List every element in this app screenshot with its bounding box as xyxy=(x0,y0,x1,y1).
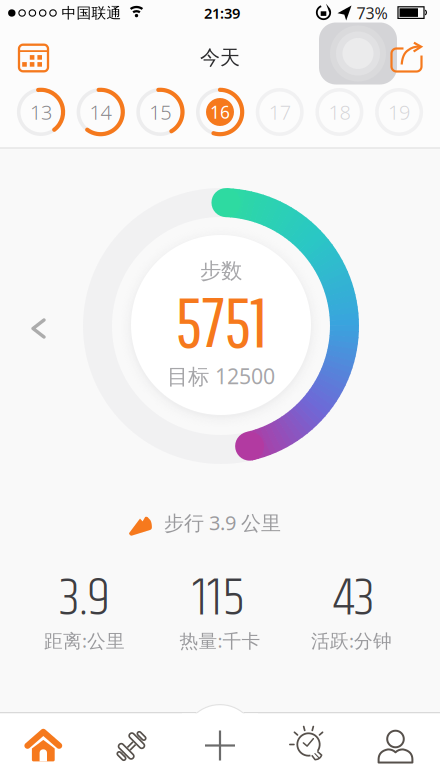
staticText: 13 xyxy=(30,99,52,125)
button[interactable]: Profile xyxy=(378,730,413,763)
staticText: 步行 3.9 公里 xyxy=(164,509,281,536)
staticText: 活跃:分钟 xyxy=(311,628,392,653)
button[interactable]: 19 xyxy=(374,87,424,137)
button[interactable]: Previous day xyxy=(31,318,45,338)
staticText: 16 xyxy=(210,100,230,123)
staticText: 热量:千卡 xyxy=(179,628,260,653)
staticText: 15 xyxy=(149,99,171,125)
button[interactable]: 15 xyxy=(135,87,185,137)
staticText: 3.9 xyxy=(59,557,110,641)
button[interactable]: Add xyxy=(205,730,235,760)
button[interactable]: AssistiveTouch xyxy=(319,22,397,84)
staticText: 115 xyxy=(192,557,245,641)
button[interactable]: 17 xyxy=(255,87,305,137)
staticText: 距离:公里 xyxy=(44,628,125,653)
staticText: 43 xyxy=(333,557,375,641)
button[interactable]: Workouts xyxy=(112,728,150,763)
button[interactable]: 16 xyxy=(195,87,245,137)
button[interactable]: 13 xyxy=(16,87,66,137)
button[interactable]: Calendar xyxy=(17,43,49,72)
staticText: 21:39 xyxy=(204,3,240,23)
staticText: 今天 xyxy=(200,45,240,70)
staticText: 19 xyxy=(388,99,410,125)
button[interactable]: 14 xyxy=(76,87,126,137)
staticText: 73% xyxy=(356,2,387,24)
button[interactable]: Discover xyxy=(291,725,324,762)
staticText: 5751 xyxy=(175,281,266,361)
staticText: 步数 xyxy=(200,258,242,284)
staticText: 中国联通 xyxy=(61,4,121,22)
button[interactable]: 18 xyxy=(314,87,364,137)
staticText: 18 xyxy=(328,99,350,125)
staticText: 17 xyxy=(269,99,291,125)
button[interactable]: Share xyxy=(391,47,422,72)
staticText: 14 xyxy=(90,99,112,125)
button[interactable]: Home xyxy=(25,729,61,762)
staticText: 目标 12500 xyxy=(167,362,275,390)
